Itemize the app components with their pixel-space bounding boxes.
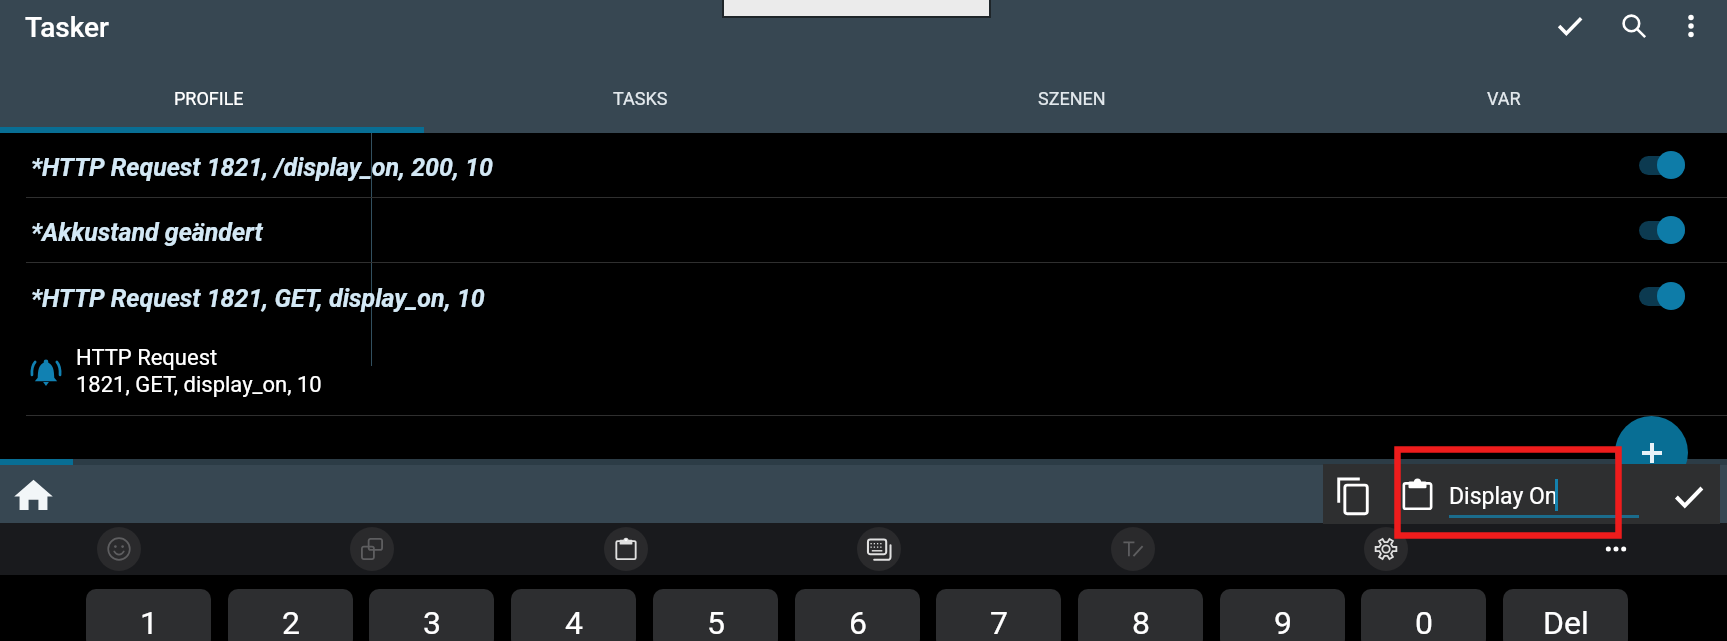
button[interactable]: 7 [936,589,1061,641]
staticText: TASKS [613,88,668,109]
staticText: *HTTP Request 1821, GET, display_on, 10 [31,284,1635,313]
button[interactable]: 4 [511,589,636,641]
button[interactable]: Keyboard tool [600,523,652,575]
button[interactable]: More options [1665,0,1717,52]
button[interactable]: Del [1503,589,1628,641]
button[interactable]: Confirm [1663,471,1715,523]
button[interactable]: Toggle profile [1635,144,1695,186]
staticText: Del [1543,604,1589,641]
button[interactable]: Copy [1329,470,1377,518]
button[interactable]: TASKS [424,70,856,133]
staticText: 8 [1132,604,1150,641]
button[interactable]: 2 [228,589,353,641]
button[interactable]: Add profile [1615,416,1688,489]
staticText: 4 [565,604,583,641]
button[interactable]: Keyboard tool [853,523,905,575]
staticText: PROFILE [174,88,244,109]
staticText: 0 [1415,604,1433,641]
staticText: 1 [140,604,158,641]
button[interactable]: Accept [1544,0,1596,52]
button[interactable]: 1 [86,589,211,641]
button[interactable]: *HTTP Request 1821, /display_on, 200, 10 [0,133,1727,197]
staticText: HTTP Request [76,345,218,371]
button[interactable]: Keyboard tool [93,523,145,575]
button[interactable]: 8 [1078,589,1203,641]
staticText: 3 [423,604,441,641]
staticText: 2 [282,604,300,641]
button[interactable]: 5 [653,589,778,641]
staticText: 6 [849,604,867,641]
button[interactable]: Keyboard tool [1107,523,1159,575]
staticText: Display On [1449,483,1558,510]
button[interactable]: Search [1608,0,1660,52]
staticText: 7 [990,604,1008,641]
button[interactable]: Paste [1393,470,1441,518]
button[interactable]: Home [7,468,59,520]
button[interactable]: PROFILE [0,70,424,133]
button[interactable]: More keyboard options [1590,523,1642,575]
button[interactable]: Toggle profile [1635,209,1695,251]
staticText: *Akkustand geändert [31,218,1635,247]
button[interactable]: VAR [1288,70,1720,133]
button[interactable]: Keyboard tool [346,523,398,575]
button[interactable]: 6 [795,589,920,641]
button[interactable]: Display On [1449,464,1639,524]
button[interactable]: 0 [1361,589,1486,641]
button[interactable]: SZENEN [856,70,1288,133]
button[interactable]: HTTP Request [0,329,1727,415]
staticText: Tasker [25,11,109,44]
button[interactable]: Toggle profile [1635,275,1695,317]
staticText: 1821, GET, display_on, 10 [76,372,322,398]
staticText: VAR [1487,88,1521,109]
button[interactable]: Keyboard tool [1360,523,1412,575]
button[interactable]: *Akkustand geändert [0,198,1727,262]
staticText: SZENEN [1038,88,1106,109]
button[interactable]: 9 [1220,589,1345,641]
button[interactable]: *HTTP Request 1821, GET, display_on, 10 [0,263,1727,329]
staticText: 5 [707,604,725,641]
staticText: 9 [1274,604,1292,641]
button[interactable]: 3 [369,589,494,641]
staticText: *HTTP Request 1821, /display_on, 200, 10 [31,153,1635,182]
